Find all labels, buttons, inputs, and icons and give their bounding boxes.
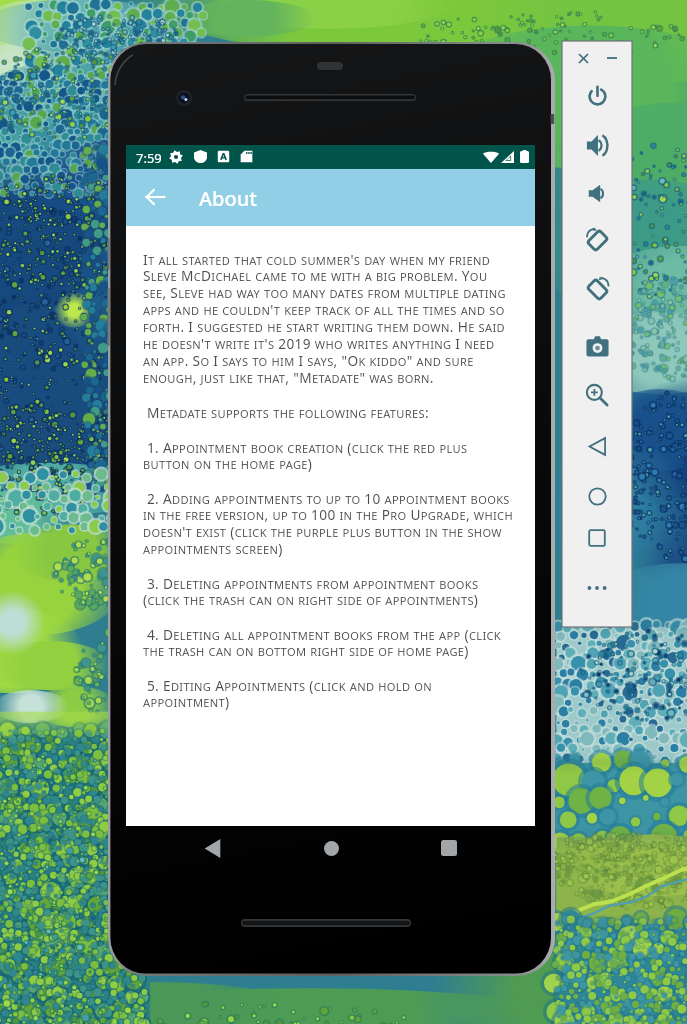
staticText: 7:59 xyxy=(136,149,162,167)
button[interactable]: Power xyxy=(579,78,615,114)
button[interactable]: Home xyxy=(579,478,615,514)
button[interactable]: Volume down xyxy=(579,175,615,211)
button[interactable]: Back xyxy=(579,428,615,464)
button[interactable]: More xyxy=(579,570,615,606)
button[interactable]: Take screenshot xyxy=(579,328,615,364)
staticText: About xyxy=(199,185,257,212)
button[interactable]: Recent apps xyxy=(433,832,465,864)
button[interactable]: Rotate right xyxy=(579,269,615,305)
staticText: 5. EDITING APPOINTMENTS (CLICK AND HOLD … xyxy=(143,676,514,711)
button[interactable]: Home xyxy=(315,832,347,864)
staticText: METADATE SUPPORTS THE FOLLOWING FEATURES… xyxy=(143,403,429,422)
button[interactable]: Overview xyxy=(579,520,615,556)
staticText: 4. DELETING ALL APPOINTMENT BOOKS FROM T… xyxy=(143,625,514,660)
staticText: 3. DELETING APPOINTMENTS FROM APPOINTMEN… xyxy=(143,574,514,609)
button[interactable]: Zoom xyxy=(579,377,615,413)
button[interactable]: Volume up xyxy=(579,127,615,163)
button[interactable]: Rotate left xyxy=(579,220,615,256)
button[interactable]: Navigate up xyxy=(138,180,172,214)
button[interactable]: Back xyxy=(196,832,228,864)
button[interactable]: Close xyxy=(572,47,594,69)
button[interactable]: Minimize xyxy=(601,47,623,69)
staticText: IT ALL STARTED THAT COLD SUMMER'S DAY WH… xyxy=(143,250,514,387)
staticText: 2. ADDING APPOINTMENTS TO UP TO 10 APPOI… xyxy=(143,489,514,558)
staticText: 1. APPOINTMENT BOOK CREATION (CLICK THE … xyxy=(143,438,514,473)
